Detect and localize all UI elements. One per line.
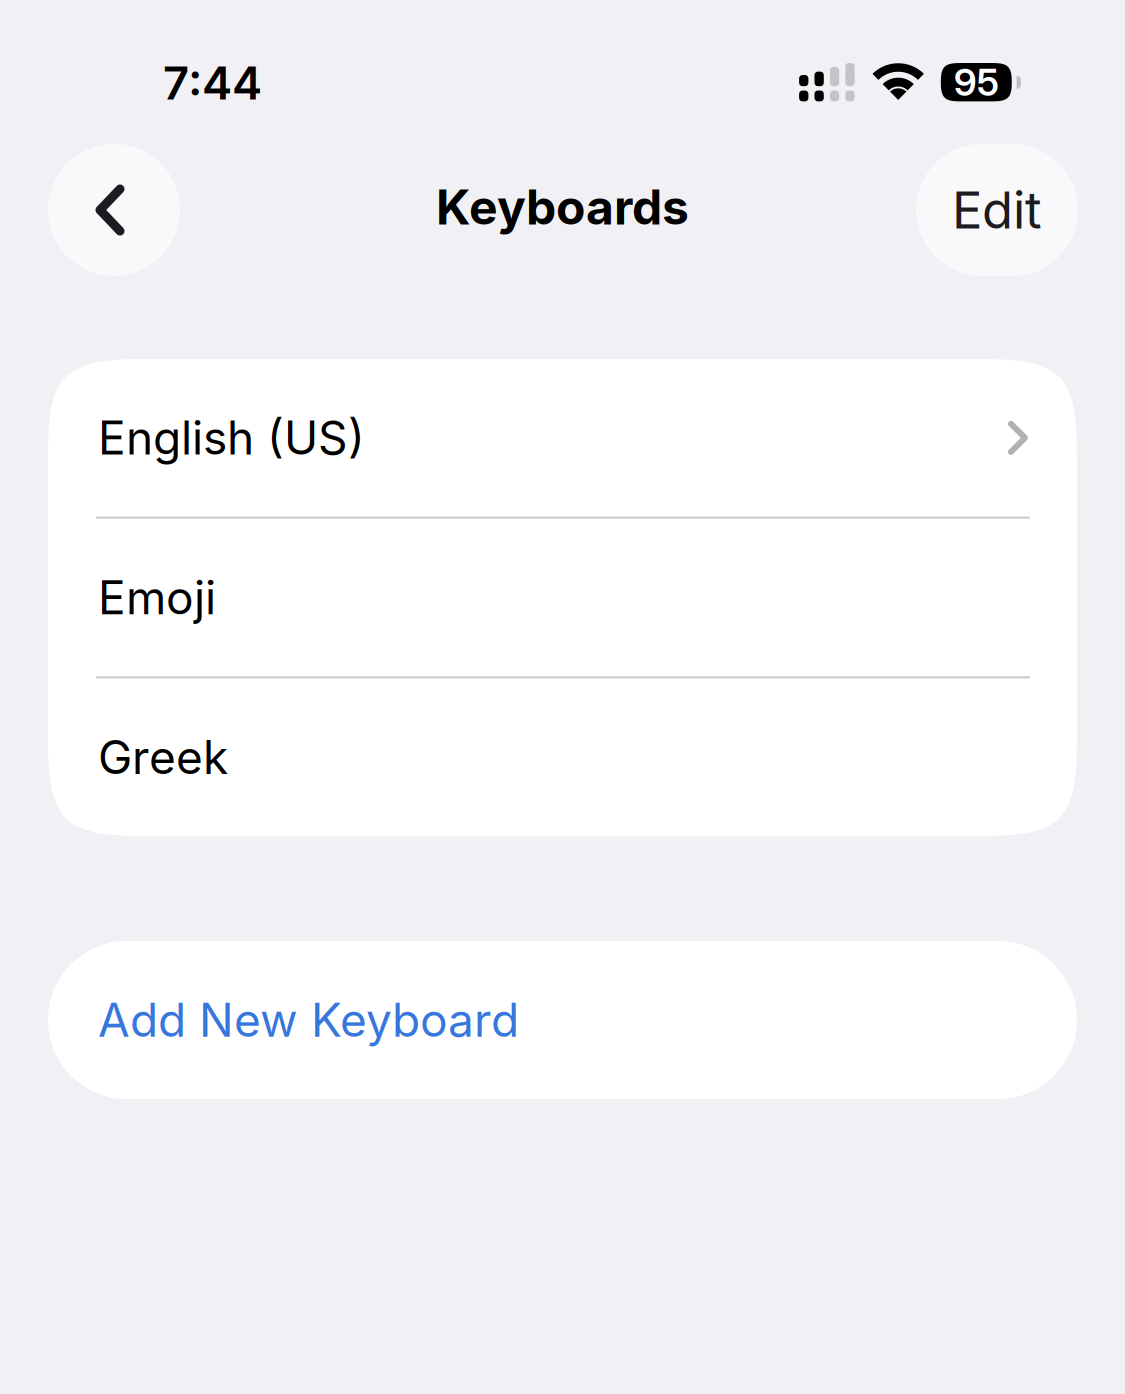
button[interactable]: English (US) (48, 359, 1077, 517)
button[interactable]: Edit (916, 144, 1078, 276)
staticText: English (US) (98, 410, 365, 466)
button[interactable]: Add New Keyboard (48, 941, 1077, 1099)
staticText: Edit (952, 179, 1042, 241)
staticText: Keyboards (436, 178, 689, 236)
button[interactable]: Back (48, 144, 180, 276)
staticText: Add New Keyboard (98, 992, 519, 1048)
staticText: 95 (954, 60, 999, 105)
staticText: Emoji (98, 570, 216, 625)
button[interactable]: Greek (48, 678, 1077, 836)
button[interactable]: Emoji (48, 519, 1077, 676)
staticText: 7:44 (163, 56, 262, 110)
staticText: Greek (98, 729, 228, 785)
